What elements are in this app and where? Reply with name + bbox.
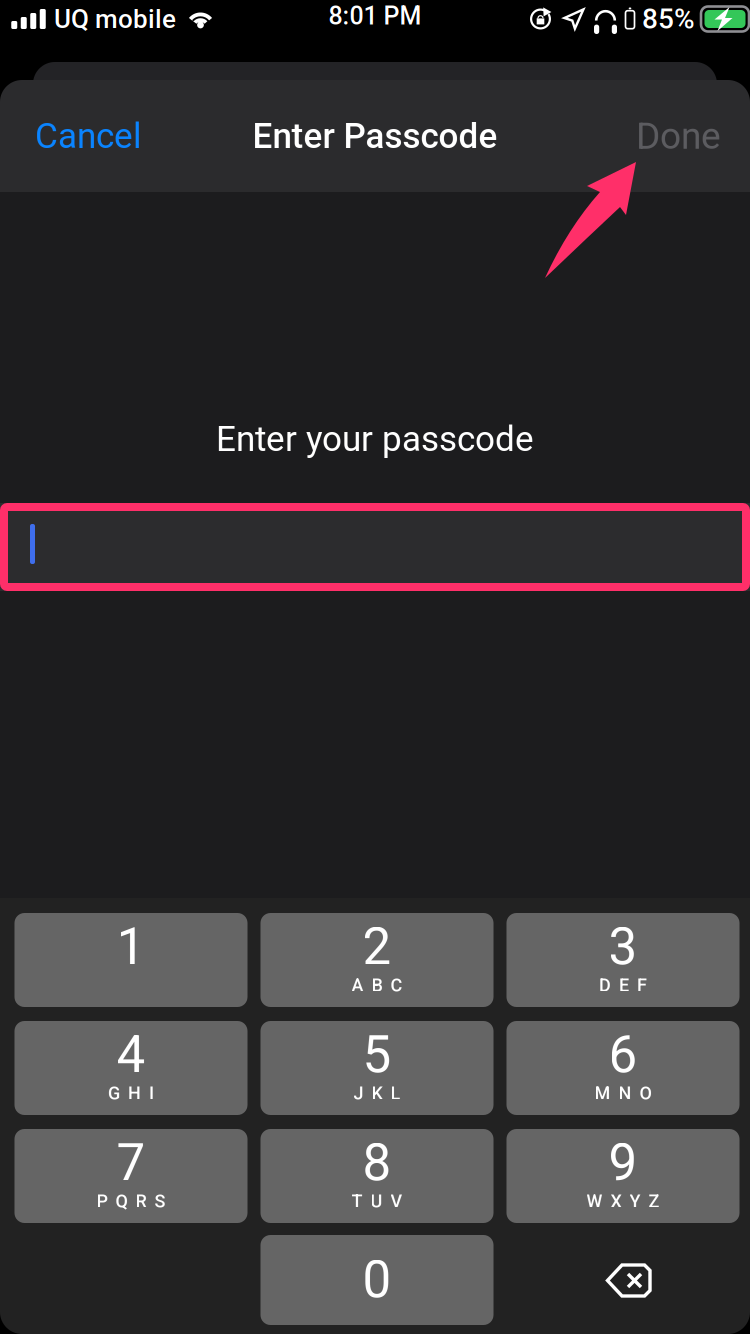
button[interactable]: 9 — [506, 1129, 739, 1223]
staticText: I — [149, 1083, 154, 1104]
button[interactable]: 5 — [260, 1021, 493, 1115]
button[interactable]: 6 — [506, 1021, 739, 1115]
staticText: O — [639, 1083, 651, 1104]
staticText: L — [390, 1083, 400, 1104]
button[interactable]: Done — [625, 101, 732, 171]
button[interactable]: 0 — [260, 1235, 493, 1325]
staticText: K — [371, 1083, 382, 1104]
staticText: B — [371, 975, 382, 996]
button[interactable]: Delete — [506, 1235, 739, 1325]
staticText: 1 — [116, 917, 145, 977]
staticText: F — [637, 975, 647, 996]
button[interactable]: 7 — [14, 1129, 247, 1223]
staticText: 8 — [362, 1133, 391, 1193]
staticText: 85% — [642, 3, 695, 35]
staticText: Q — [115, 1191, 127, 1212]
staticText: S — [154, 1191, 165, 1212]
staticText: R — [135, 1191, 146, 1212]
button[interactable]: 2 — [260, 913, 493, 1007]
staticText: N — [618, 1083, 631, 1104]
staticText: 7 — [116, 1133, 145, 1193]
staticText: 4 — [116, 1025, 145, 1085]
staticText: 3 — [608, 917, 637, 977]
staticText: W — [586, 1191, 602, 1212]
staticText: H — [128, 1083, 141, 1104]
staticText: Z — [648, 1191, 659, 1212]
staticText: 5 — [362, 1025, 391, 1085]
staticText: 6 — [608, 1025, 637, 1085]
staticText: UQ mobile — [54, 4, 176, 34]
staticText: Cancel — [35, 115, 142, 156]
staticText: 9 — [608, 1133, 637, 1193]
button[interactable]: 8 — [260, 1129, 493, 1223]
staticText: Enter Passcode — [252, 115, 497, 156]
button[interactable]: Cancel — [18, 101, 159, 171]
staticText: 2 — [362, 917, 391, 977]
staticText: G — [108, 1083, 120, 1104]
staticText: X — [610, 1191, 621, 1212]
staticText: U — [370, 1191, 382, 1212]
staticText: Y — [629, 1191, 640, 1212]
staticText: 8:01 PM — [328, 1, 421, 31]
button[interactable]: 4 — [14, 1021, 247, 1115]
staticText: 0 — [362, 1250, 391, 1310]
staticText: P — [96, 1191, 107, 1212]
button[interactable]: 3 — [506, 913, 739, 1007]
staticText: Done — [636, 114, 721, 158]
button[interactable]: 1 — [14, 913, 247, 1007]
staticText: C — [390, 975, 402, 996]
staticText: A — [351, 975, 363, 996]
staticText: Enter your passcode — [216, 418, 534, 459]
staticText: D — [599, 975, 611, 996]
staticText: J — [353, 1083, 363, 1104]
staticText: T — [351, 1191, 362, 1212]
staticText: V — [390, 1191, 402, 1212]
staticText: E — [619, 975, 629, 996]
staticText: M — [594, 1083, 610, 1104]
